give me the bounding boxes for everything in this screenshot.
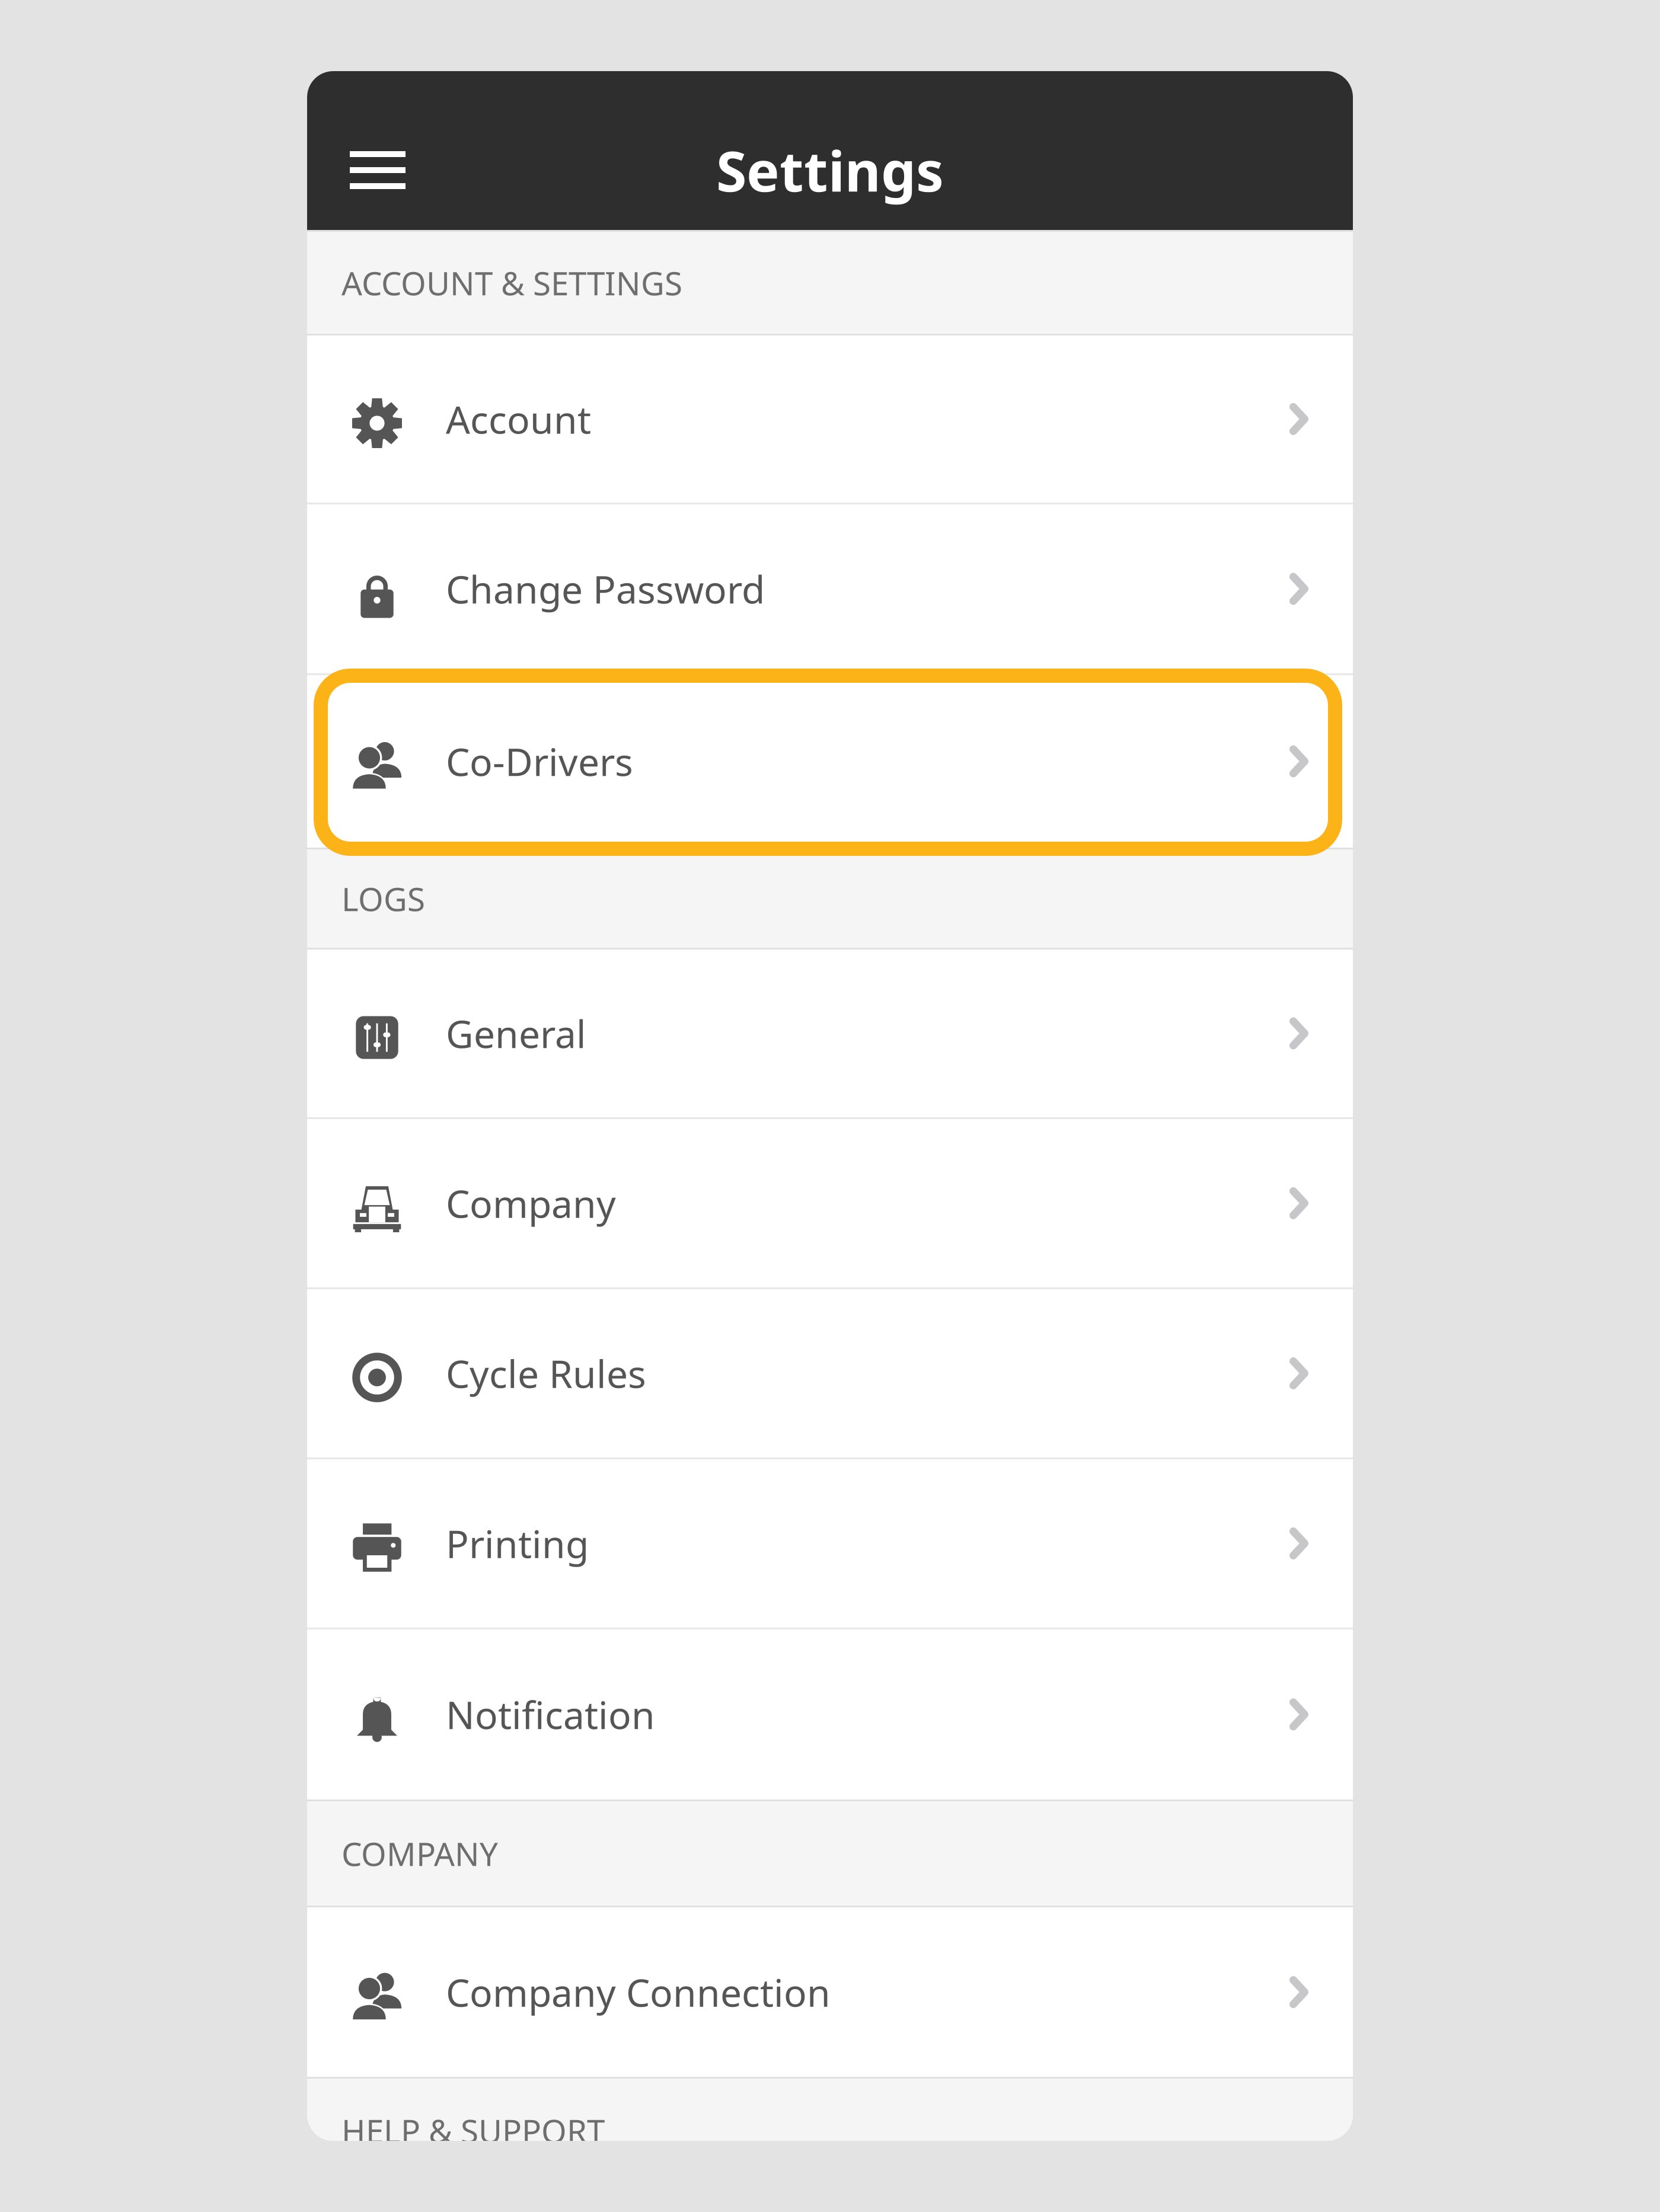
staticText: Co-Drivers <box>446 736 633 787</box>
staticText: HELP & SUPPORT <box>341 2109 605 2152</box>
staticText: Cycle Rules <box>446 1348 646 1399</box>
staticText: Company Connection <box>446 1967 831 2017</box>
button[interactable]: Menu <box>328 121 427 219</box>
staticText: Settings <box>716 133 944 207</box>
staticText: ACCOUNT & SETTINGS <box>341 261 682 304</box>
button[interactable]: Account <box>307 335 1353 503</box>
staticText: COMPANY <box>341 1832 498 1875</box>
staticText: LOGS <box>341 877 425 920</box>
button[interactable]: Co-Drivers <box>307 675 1353 848</box>
button[interactable]: Printing <box>307 1459 1353 1628</box>
button[interactable]: Change Password <box>307 504 1353 673</box>
staticText: Account <box>446 394 591 444</box>
staticText: Notification <box>446 1689 655 1740</box>
button[interactable]: Cycle Rules <box>307 1289 1353 1457</box>
staticText: Company <box>446 1178 616 1228</box>
button[interactable]: Company Connection <box>307 1907 1353 2077</box>
button[interactable]: Company <box>307 1119 1353 1287</box>
staticText: Change Password <box>446 564 765 614</box>
button[interactable]: Notification <box>307 1629 1353 1799</box>
button[interactable]: General <box>307 950 1353 1117</box>
staticText: General <box>446 1008 586 1059</box>
staticText: Printing <box>446 1518 589 1569</box>
